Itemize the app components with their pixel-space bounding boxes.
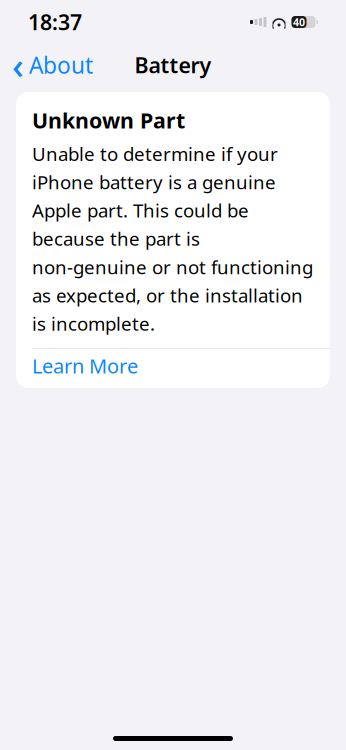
staticText: 18:37	[28, 8, 82, 36]
button[interactable]: ‹	[2, 45, 103, 85]
staticText: Learn More	[32, 353, 138, 379]
staticText: About	[29, 50, 93, 80]
staticText: Unable to determine if your iPhone batte…	[32, 141, 313, 336]
staticText: Unknown Part	[32, 106, 185, 134]
button[interactable]: Learn More	[16, 349, 330, 383]
staticText: Battery	[134, 51, 211, 79]
staticText: ‹	[12, 41, 24, 89]
staticText: 40	[293, 15, 305, 29]
